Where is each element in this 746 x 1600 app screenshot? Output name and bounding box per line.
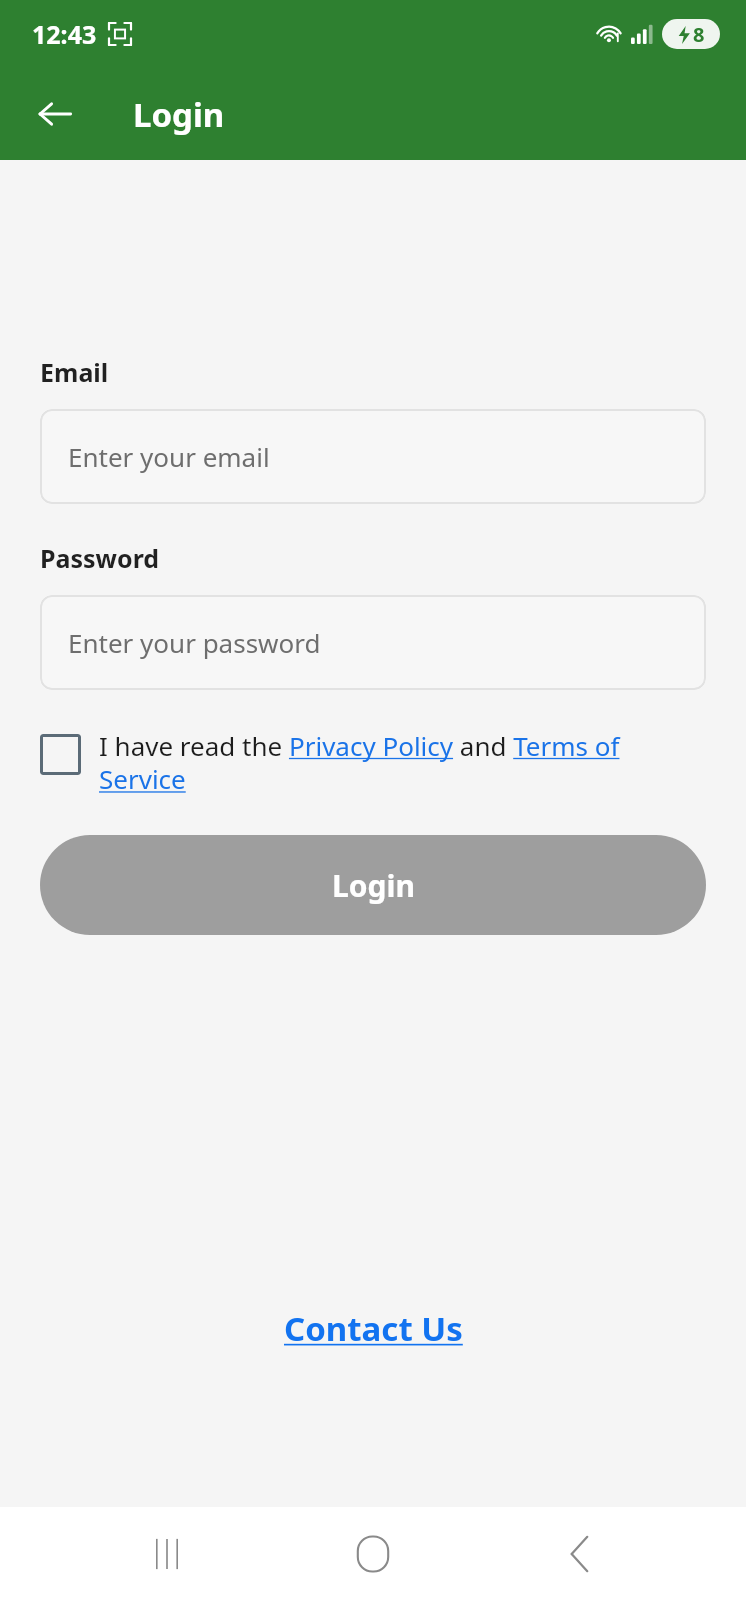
button[interactable]: Back — [540, 1514, 620, 1594]
button[interactable]: Contact Us — [276, 1298, 471, 1359]
button[interactable]: Accept terms checkbox — [40, 728, 706, 797]
button[interactable]: Home — [333, 1514, 413, 1594]
staticText: Contact Us — [284, 1306, 463, 1351]
staticText: Email — [40, 355, 109, 389]
other: Accept terms checkbox — [40, 734, 81, 775]
staticText: Password — [40, 541, 160, 575]
staticText: I have read the Privacy Policy and Terms… — [99, 728, 706, 797]
button[interactable]: Back — [22, 81, 88, 147]
button[interactable]: Login — [40, 835, 706, 935]
button[interactable]: Recent apps — [127, 1514, 207, 1594]
staticText: Enter your password — [68, 625, 321, 660]
staticText: Enter your email — [68, 439, 270, 474]
button[interactable]: Enter your password — [40, 595, 706, 690]
staticText: Login — [332, 865, 415, 906]
staticText: 12:43 — [32, 17, 97, 51]
staticText: 8 — [693, 21, 705, 48]
staticText: Login — [133, 92, 225, 137]
button[interactable]: Enter your email — [40, 409, 706, 504]
